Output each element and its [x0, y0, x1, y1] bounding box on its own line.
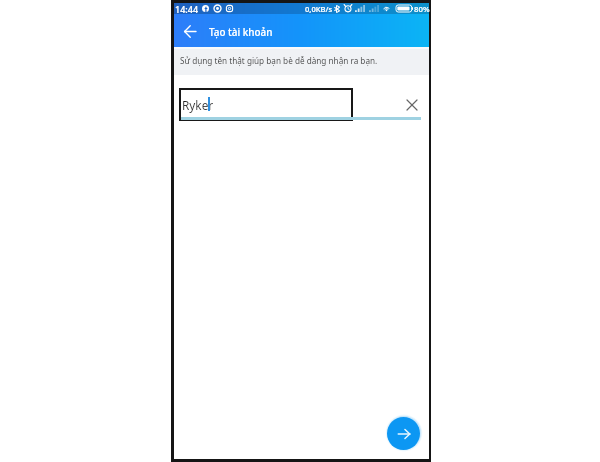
button[interactable]	[181, 88, 422, 120]
staticText: 0,0KB/s	[305, 4, 333, 14]
staticText: 80%	[414, 4, 430, 15]
staticText: Ryker	[182, 97, 214, 113]
staticText: 14:44	[175, 3, 199, 14]
button[interactable]: Clear text	[403, 96, 421, 114]
staticText: Tạo tài khoản	[209, 25, 273, 38]
button[interactable]: Back	[179, 20, 201, 42]
button[interactable]: Next	[387, 417, 420, 450]
staticText: Sử dụng tên thật giúp bạn bè dễ dàng nhậ…	[180, 55, 378, 66]
